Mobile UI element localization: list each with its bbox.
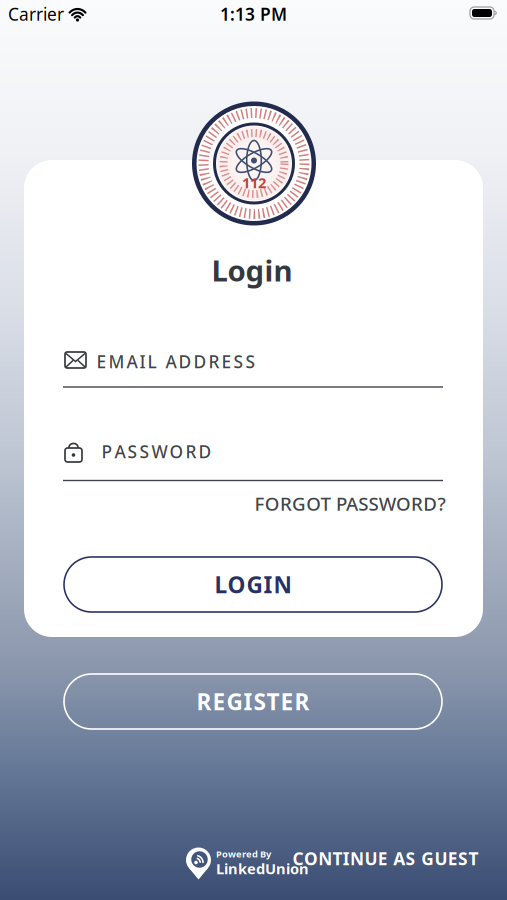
button[interactable]: CONTINUE AS GUEST: [293, 847, 478, 870]
button[interactable]: FORGOT PASSWORD?: [254, 491, 445, 516]
staticText: 1:13 PM: [220, 2, 287, 25]
button[interactable]: P A S S W O R D: [63, 436, 443, 483]
staticText: LOGIN: [214, 569, 291, 599]
staticText: Login: [211, 250, 292, 289]
staticText: Powered By: [216, 848, 271, 860]
button[interactable]: LOGIN: [64, 557, 442, 612]
staticText: P A S S W O R D: [101, 440, 211, 463]
staticText: 112: [242, 173, 266, 192]
staticText: FORGOT PASSWORD?: [254, 491, 445, 516]
staticText: LinkedUnion: [216, 859, 309, 878]
staticText: Carrier: [8, 2, 64, 25]
button[interactable]: E M A I L A D D R E S S: [63, 345, 443, 389]
staticText: E M A I L A D D R E S S: [96, 350, 255, 373]
staticText: CONTINUE AS GUEST: [293, 847, 478, 870]
staticText: REGISTER: [196, 686, 309, 716]
button[interactable]: REGISTER: [64, 674, 442, 729]
